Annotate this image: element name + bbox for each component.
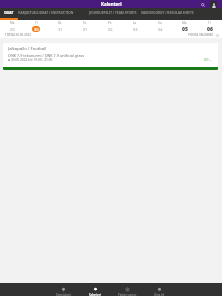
staticText: 0/1 – bbox=[204, 58, 212, 62]
staticText: Ma bbox=[10, 21, 15, 25]
staticText: 31 bbox=[58, 27, 63, 32]
staticText: Ke bbox=[58, 21, 62, 25]
button[interactable]: Paikan varaus bbox=[111, 283, 143, 296]
button[interactable]: Oma tili bbox=[143, 283, 175, 296]
staticText: TIISTAI 30.05.2022 bbox=[5, 33, 31, 37]
staticText: Pe bbox=[108, 21, 112, 25]
staticText: 05 bbox=[182, 26, 188, 32]
staticText: Ilmoitukset bbox=[56, 293, 71, 296]
staticText: Kalenteri bbox=[101, 1, 122, 7]
button[interactable]: Ti bbox=[197, 20, 222, 32]
staticText: 02 bbox=[108, 27, 113, 32]
button[interactable]: Ilmoitukset bbox=[47, 283, 79, 296]
button[interactable]: Jalkapallo / Football bbox=[3, 43, 218, 70]
button[interactable]: Pe bbox=[97, 20, 122, 32]
staticText: La bbox=[133, 21, 137, 25]
staticText: 30 bbox=[34, 27, 39, 32]
button[interactable]: Search bbox=[200, 2, 206, 8]
button[interactable]: Ma bbox=[0, 20, 24, 32]
other: Clear filters bbox=[216, 34, 219, 37]
staticText: Ti bbox=[208, 21, 211, 25]
button[interactable]: La bbox=[122, 20, 147, 32]
button[interactable]: Su bbox=[147, 20, 172, 32]
button[interactable]: Profile bbox=[210, 1, 217, 8]
staticText: 06 bbox=[207, 26, 213, 32]
button[interactable]: Ke bbox=[48, 20, 72, 32]
staticText: To bbox=[83, 21, 87, 25]
staticText: HARJOITUSLUOKAT / INSTRUCTION CLASSES bbox=[18, 11, 86, 15]
staticText: OMAT bbox=[4, 11, 14, 15]
button[interactable]: HARJOITUSLUOKAT / INSTRUCTION CLASSES bbox=[18, 8, 86, 18]
button[interactable]: OMAT bbox=[0, 8, 18, 18]
button[interactable]: Kalenteri bbox=[79, 283, 111, 296]
staticText: Jalkapallo / Football bbox=[8, 46, 47, 52]
staticText: ONK 7-9 tekonurmi / ONK 7-9 artificial g… bbox=[8, 53, 85, 58]
button[interactable]: VAKIOVUOROT / REGULAR SHIFTS bbox=[139, 8, 195, 18]
button[interactable]: Ti bbox=[24, 20, 48, 32]
button[interactable]: Ma bbox=[172, 20, 197, 32]
staticText: Ti bbox=[35, 21, 38, 25]
staticText: ▪ 30.05.2022 klo 19:30 - 21:00 bbox=[8, 58, 53, 62]
staticText: 01 bbox=[83, 27, 88, 32]
staticText: VAKIOVUOROT / REGULAR SHIFTS bbox=[141, 11, 194, 15]
staticText: Su bbox=[158, 21, 162, 25]
staticText: POISTA VALINNAT bbox=[188, 33, 214, 37]
button[interactable]: To bbox=[72, 20, 97, 32]
staticText: Kalenteri bbox=[89, 293, 101, 296]
staticText: Paikan varaus bbox=[118, 293, 137, 296]
staticText: JOUKKUEPELIT / TEAM SPORTS bbox=[89, 11, 137, 15]
staticText: 04 bbox=[158, 27, 163, 32]
staticText: 03 bbox=[133, 27, 138, 32]
staticText: Oma tili bbox=[154, 293, 165, 296]
staticText: Ma bbox=[182, 21, 187, 25]
button[interactable]: JOUKKUEPELIT / TEAM SPORTS bbox=[86, 8, 139, 18]
staticText: 29 bbox=[10, 27, 15, 32]
